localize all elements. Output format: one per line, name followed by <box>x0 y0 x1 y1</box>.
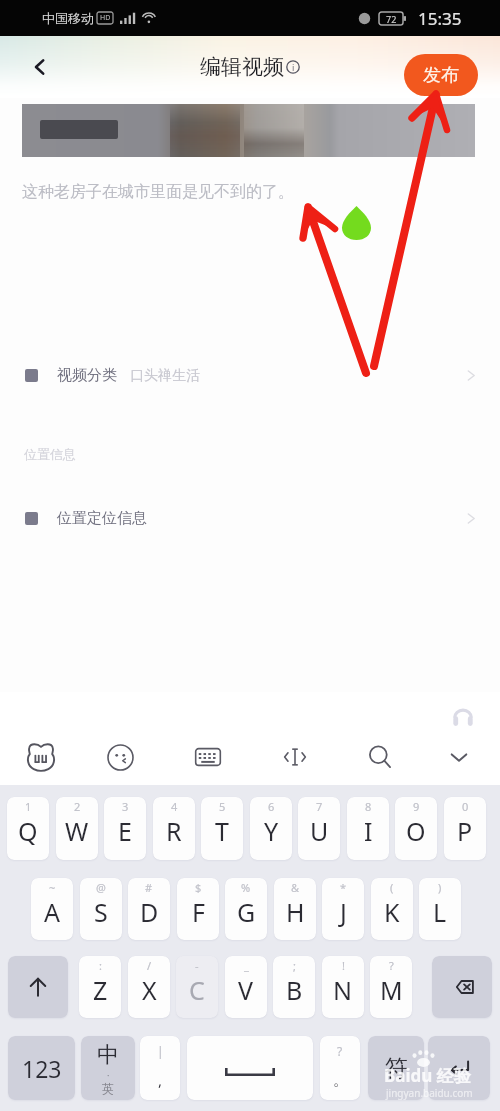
button[interactable]: # <box>128 878 170 940</box>
staticText: 英 <box>102 1081 114 1096</box>
staticText: ~ <box>49 880 56 895</box>
staticText: : <box>99 958 102 973</box>
staticText: ) <box>438 880 442 895</box>
button[interactable]: ~ <box>31 878 73 940</box>
staticText: M <box>380 973 403 1007</box>
staticText: , <box>158 1070 163 1090</box>
button[interactable]: | <box>140 1036 180 1100</box>
button[interactable]: @ <box>80 878 122 940</box>
staticText: 视频分类 <box>57 366 117 385</box>
button[interactable]: 1 <box>7 797 49 860</box>
staticText: K <box>384 895 400 929</box>
button[interactable]: 123 <box>8 1036 75 1100</box>
staticText: | <box>157 1043 164 1059</box>
staticText: 编辑视频 <box>200 54 284 80</box>
staticText: U <box>310 814 329 848</box>
button[interactable]: 8 <box>347 797 389 860</box>
button[interactable]: Baidu input <box>18 734 64 780</box>
button[interactable]: Enter <box>428 1036 490 1100</box>
staticText: 15:35 <box>418 7 462 30</box>
staticText: A <box>44 895 60 929</box>
button[interactable]: 7 <box>298 797 340 860</box>
button[interactable]: Keyboard <box>185 734 231 780</box>
staticText: 。 <box>333 1071 348 1090</box>
staticText: I <box>364 814 373 848</box>
button[interactable]: Collapse <box>436 734 482 780</box>
staticText: ? <box>389 958 394 973</box>
staticText: J <box>340 895 347 929</box>
staticText: ( <box>390 880 394 895</box>
button[interactable]: ? <box>370 956 412 1018</box>
staticText: D <box>140 895 159 929</box>
staticText: 3 <box>122 799 129 814</box>
button[interactable]: 发布 <box>404 54 478 96</box>
staticText: V <box>238 973 254 1007</box>
button[interactable]: Delete <box>432 956 492 1018</box>
staticText: 这种老房子在城市里面是见不到的了。 <box>22 182 294 202</box>
staticText: / <box>147 958 152 973</box>
staticText: # <box>145 880 153 895</box>
staticText: ? <box>337 1043 343 1059</box>
staticText: R <box>166 814 182 848</box>
staticText: 位置信息 <box>24 446 76 462</box>
staticText: - <box>195 958 199 973</box>
staticText: 位置定位信息 <box>57 509 147 528</box>
button[interactable]: ( <box>371 878 413 940</box>
staticText: 7 <box>316 799 323 814</box>
button[interactable]: ! <box>322 956 364 1018</box>
staticText: $ <box>195 880 202 895</box>
button[interactable]: _ <box>225 956 267 1018</box>
button[interactable]: Setting row <box>0 496 500 540</box>
button[interactable]: & <box>274 878 316 940</box>
button[interactable]: 5 <box>201 797 243 860</box>
button[interactable]: ) <box>419 878 461 940</box>
staticText: 9 <box>413 799 420 814</box>
button[interactable]: Shift <box>8 956 68 1018</box>
button[interactable]: ; <box>273 956 315 1018</box>
button[interactable]: Info <box>286 60 300 74</box>
button[interactable]: ? <box>320 1036 360 1100</box>
button[interactable]: $ <box>177 878 219 940</box>
button[interactable]: 9 <box>395 797 437 860</box>
staticText: * <box>340 880 347 895</box>
button[interactable]: Setting row <box>0 353 500 397</box>
staticText: Baidu 经验 <box>384 1064 471 1087</box>
button[interactable]: Back <box>20 47 60 87</box>
button[interactable]: 3 <box>104 797 146 860</box>
staticText: HD <box>100 13 111 23</box>
staticText: O <box>406 814 426 848</box>
button[interactable]: % <box>225 878 267 940</box>
button[interactable]: 2 <box>56 797 98 860</box>
staticText: 中国移动 <box>42 10 94 26</box>
button[interactable]: Search <box>357 734 403 780</box>
staticText: 8 <box>365 799 372 814</box>
button[interactable]: 0 <box>444 797 486 860</box>
button[interactable]: * <box>322 878 364 940</box>
button[interactable]: 6 <box>250 797 292 860</box>
staticText: 4 <box>171 799 178 814</box>
staticText: ; <box>293 958 296 973</box>
staticText: 5 <box>219 799 226 814</box>
staticText: 1 <box>25 799 32 814</box>
staticText: 6 <box>268 799 275 814</box>
button[interactable]: : <box>79 956 121 1018</box>
staticText: P <box>457 814 473 848</box>
staticText: & <box>291 880 300 895</box>
button[interactable]: 符 <box>368 1036 424 1100</box>
button[interactable]: / <box>128 956 170 1018</box>
staticText: 0 <box>462 799 469 814</box>
button[interactable]: Cursor <box>272 734 318 780</box>
staticText: 72 <box>386 13 397 25</box>
staticText: 符 <box>385 1054 408 1083</box>
button[interactable]: Emoji <box>97 734 143 780</box>
button[interactable]: 中 <box>81 1036 135 1100</box>
staticText: S <box>94 895 108 929</box>
staticText: _ <box>244 958 249 973</box>
button[interactable]: Space <box>187 1036 313 1100</box>
staticText: X <box>142 973 157 1007</box>
staticText: i <box>292 61 295 73</box>
staticText: G <box>237 895 256 929</box>
button[interactable]: 4 <box>153 797 195 860</box>
button[interactable]: - <box>176 956 218 1018</box>
staticText: N <box>333 973 353 1007</box>
